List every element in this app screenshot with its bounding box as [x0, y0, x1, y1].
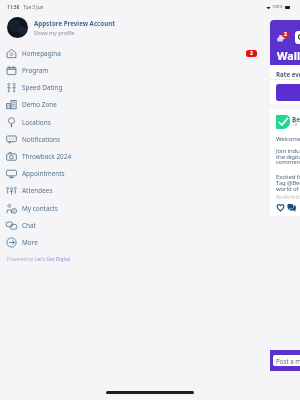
- staticText: 2: [284, 31, 287, 38]
- staticText: Be: [292, 115, 300, 124]
- button[interactable]: Attendees: [0, 182, 132, 199]
- staticText: Demo Zone: [22, 100, 57, 109]
- staticText: Welcome to: [276, 135, 300, 143]
- staticText: Tue 3 Jun: [23, 4, 44, 11]
- staticText: Be the first to: [276, 194, 300, 200]
- staticText: Tag @Beco: [276, 179, 300, 187]
- button[interactable]: Throwback 2024: [0, 148, 132, 165]
- staticText: Post a me: [276, 357, 300, 365]
- staticText: 11:38: [7, 4, 20, 11]
- button[interactable]: Like: [276, 203, 285, 212]
- staticText: the digital: [276, 153, 300, 161]
- staticText: Notifications: [22, 135, 61, 144]
- button[interactable]: Search: [295, 31, 300, 44]
- staticText: Let's Get Digital: [35, 256, 71, 263]
- button[interactable]: My contacts: [0, 200, 132, 217]
- staticText: Wall: [277, 48, 300, 63]
- staticText: commerce: [276, 158, 300, 166]
- staticText: Powered by: [7, 256, 35, 263]
- staticText: Program: [22, 66, 49, 75]
- staticText: More: [22, 238, 38, 247]
- staticText: 2: [250, 50, 253, 57]
- staticText: Homepagina: [22, 49, 61, 58]
- button[interactable]: Appointments: [0, 165, 132, 182]
- staticText: Speed Dating: [22, 83, 63, 92]
- staticText: Appstore Preview Account: [34, 19, 115, 27]
- button[interactable]: 2 unread: [246, 50, 257, 57]
- button[interactable]: Appstore Preview Account: [0, 17, 132, 38]
- button[interactable]: Speed Dating: [0, 79, 132, 96]
- button[interactable]: Post a me: [273, 355, 300, 366]
- button[interactable]: Messages: [277, 33, 288, 44]
- staticText: 100%: [272, 4, 283, 10]
- staticText: My contacts: [22, 204, 58, 213]
- button[interactable]: Notifications: [0, 131, 132, 148]
- button[interactable]: Chat: [0, 217, 132, 234]
- staticText: world of e: [276, 185, 300, 193]
- staticText: Appointments: [22, 169, 65, 178]
- button[interactable]: [276, 84, 300, 101]
- staticText: Throwback 2024: [22, 152, 72, 161]
- staticText: Excited for: [276, 173, 300, 181]
- staticText: Rate event: [276, 70, 300, 78]
- staticText: Attendees: [22, 186, 53, 195]
- button[interactable]: Program: [0, 62, 132, 79]
- staticText: Chat: [22, 221, 36, 230]
- staticText: Show my profile: [34, 29, 75, 36]
- button[interactable]: More: [0, 234, 132, 251]
- staticText: Locations: [22, 118, 51, 127]
- button[interactable]: Demo Zone: [0, 96, 132, 113]
- button[interactable]: Homepagina: [0, 45, 132, 62]
- staticText: Join indust: [276, 147, 300, 155]
- button[interactable]: Locations: [0, 114, 132, 131]
- staticText: 10: [292, 121, 298, 127]
- button[interactable]: Comment: [287, 203, 296, 212]
